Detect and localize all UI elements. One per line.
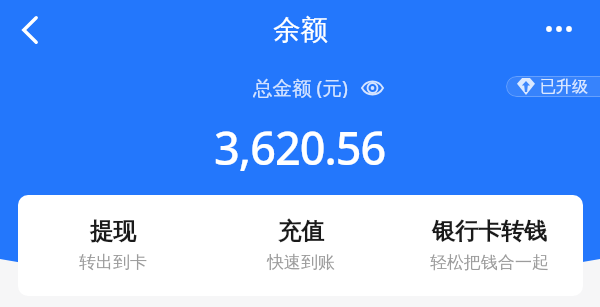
button[interactable]: More options xyxy=(537,7,581,51)
button[interactable]: 总金额 (元) xyxy=(253,74,348,98)
button[interactable]: Toggle amount visibility xyxy=(355,76,389,100)
button[interactable]: 银行卡转钱 xyxy=(395,195,583,296)
staticText: 充值 xyxy=(278,217,324,246)
staticText: 银行卡转钱 xyxy=(432,217,547,246)
staticText: 快速到账 xyxy=(267,252,335,273)
staticText: 轻松把钱合一起 xyxy=(430,252,549,273)
button[interactable]: 充值 xyxy=(207,195,395,296)
staticText: 提现 xyxy=(90,217,136,246)
staticText: 已升级 xyxy=(540,77,588,97)
staticText: 总金额 (元) xyxy=(253,74,348,98)
staticText: 转出到卡 xyxy=(79,252,147,273)
staticText: 3,620.56 xyxy=(214,117,386,178)
button[interactable]: 已升级 xyxy=(506,76,600,97)
button[interactable]: 提现 xyxy=(18,195,207,296)
staticText: 余额 xyxy=(273,13,328,48)
button[interactable]: Back xyxy=(2,2,58,58)
